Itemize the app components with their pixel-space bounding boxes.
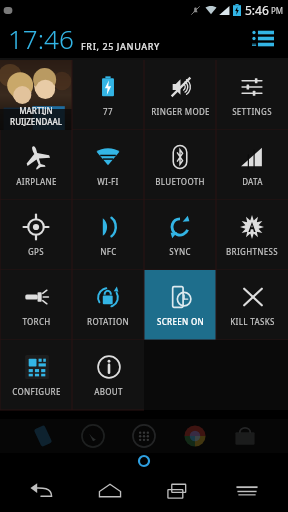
button[interactable]: Dock app 1 bbox=[29, 422, 57, 450]
button[interactable]: Back bbox=[13, 470, 69, 512]
staticText: SCREEN ON bbox=[157, 316, 204, 327]
button[interactable]: Dock app 5 bbox=[231, 422, 259, 450]
button[interactable]: AIRPLANE bbox=[0, 130, 72, 200]
button[interactable]: TORCH bbox=[0, 270, 72, 340]
button[interactable]: Recents bbox=[150, 470, 206, 512]
button[interactable]: Dock app 2 bbox=[79, 422, 107, 450]
button[interactable]: Dock app 4 bbox=[181, 422, 209, 450]
button[interactable]: WI-FI bbox=[72, 130, 144, 200]
button[interactable]: Dock app 3 bbox=[130, 422, 158, 450]
button[interactable]: 77 bbox=[72, 60, 144, 130]
button[interactable]: CONFIGURE bbox=[0, 340, 72, 410]
button[interactable]: ROTATION bbox=[72, 270, 144, 340]
staticText: SYNC bbox=[169, 246, 191, 257]
button[interactable]: SCREEN ON bbox=[144, 270, 216, 340]
staticText: ROTATION bbox=[87, 316, 129, 327]
staticText: BLUETOOTH bbox=[155, 176, 205, 187]
button[interactable]: ABOUT bbox=[72, 340, 144, 410]
staticText: RUIJZENDAAL bbox=[10, 116, 62, 127]
staticText: SETTINGS bbox=[232, 106, 272, 117]
button[interactable]: Notifications list bbox=[246, 22, 280, 56]
staticText: WI-FI bbox=[97, 176, 119, 187]
staticText: KILL TASKS bbox=[230, 316, 275, 327]
button[interactable]: BLUETOOTH bbox=[144, 130, 216, 200]
staticText: BRIGHTNESS bbox=[226, 246, 278, 257]
button[interactable]: BRIGHTNESS bbox=[216, 200, 288, 270]
staticText: PM bbox=[271, 5, 284, 16]
staticText: TORCH bbox=[22, 316, 51, 327]
staticText: 5:46 bbox=[245, 2, 269, 18]
staticText: GPS bbox=[28, 246, 44, 257]
button[interactable]: GPS bbox=[0, 200, 72, 270]
button[interactable]: DATA bbox=[216, 130, 288, 200]
staticText: MARTIJN bbox=[19, 105, 53, 116]
staticText: AIRPLANE bbox=[16, 176, 57, 187]
button[interactable]: Menu bbox=[219, 470, 275, 512]
staticText: 17:46 bbox=[8, 21, 74, 56]
staticText: ABOUT bbox=[94, 386, 123, 397]
staticText: RINGER MODE bbox=[151, 106, 210, 117]
staticText: 77 bbox=[103, 106, 113, 117]
button[interactable]: SETTINGS bbox=[216, 60, 288, 130]
staticText: FRI, 25 JANUARY bbox=[81, 40, 160, 52]
staticText: DATA bbox=[242, 176, 263, 187]
staticText: CONFIGURE bbox=[12, 386, 61, 397]
button[interactable]: KILL TASKS bbox=[216, 270, 288, 340]
button[interactable]: RINGER MODE bbox=[144, 60, 216, 130]
button[interactable]: SYNC bbox=[144, 200, 216, 270]
button[interactable]: User profile bbox=[0, 60, 72, 130]
button[interactable]: Home bbox=[82, 470, 138, 512]
button[interactable]: NFC bbox=[72, 200, 144, 270]
staticText: NFC bbox=[100, 246, 117, 257]
